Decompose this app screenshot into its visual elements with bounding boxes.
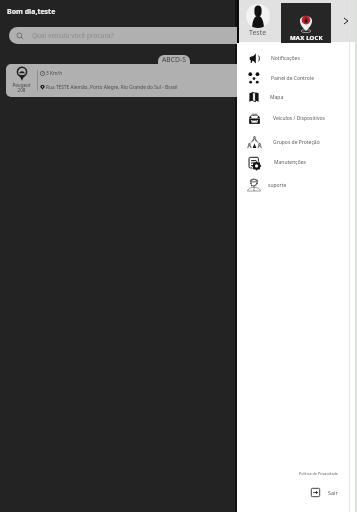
staticText: 3 Km/h — [46, 70, 63, 77]
button[interactable]: suporte — [237, 175, 357, 195]
button[interactable]: Painel de Controle — [237, 68, 357, 88]
button[interactable]: Qual veículo você procura? — [9, 27, 348, 44]
staticText: Manutenções — [274, 159, 306, 166]
staticText: Rua TESTE Alemão, Porto Alegre, Rio Gran… — [46, 84, 178, 91]
staticText: Painel de Controle — [271, 75, 314, 82]
staticText: Notificações — [271, 55, 300, 62]
staticText: suporte — [268, 182, 287, 189]
staticText: Veículos / Dispositivos — [273, 115, 325, 122]
staticText: ABCD-S — [162, 55, 186, 64]
button[interactable]: Grupos de Proteção — [237, 132, 357, 152]
staticText: Teste — [249, 28, 267, 38]
staticText: Sair — [328, 489, 338, 496]
staticText: Qual veículo você procura? — [32, 31, 114, 40]
staticText: MAX LOCK — [290, 34, 323, 42]
staticText: Mapa — [270, 94, 284, 101]
staticText: Grupos de Proteção — [273, 139, 320, 146]
button[interactable]: Peugeot 208 — [6, 64, 351, 97]
button[interactable]: Mapa — [237, 87, 357, 107]
button[interactable]: Política de Privacidade — [299, 471, 338, 476]
staticText: Bom dia,teste — [7, 7, 56, 17]
button[interactable]: MAX LOCK — [281, 3, 331, 43]
button[interactable]: Expandir — [338, 13, 354, 29]
staticText: Peugeot 208 — [12, 82, 31, 94]
button[interactable]: Notificações — [237, 48, 357, 68]
button[interactable]: Veículos / Dispositivos — [237, 108, 357, 128]
button[interactable]: Sair — [310, 487, 338, 498]
button[interactable]: Manutenções — [237, 152, 357, 172]
